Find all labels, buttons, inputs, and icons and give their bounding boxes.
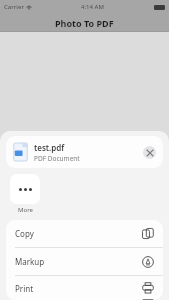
staticText: 4:14 AM (81, 3, 104, 11)
staticText: More (18, 206, 33, 214)
staticText: test.pdf (34, 142, 65, 153)
button[interactable]: Markup (6, 248, 163, 275)
button[interactable]: Print (6, 276, 163, 300)
button[interactable]: Copy (6, 220, 163, 247)
staticText: PDF Document (34, 154, 80, 163)
button[interactable]: test.pdf (6, 136, 163, 168)
staticText: Markup (15, 256, 45, 267)
button[interactable]: Close (143, 146, 156, 159)
button[interactable]: More (10, 174, 40, 214)
staticText: Carrier (4, 3, 24, 11)
staticText: Copy (15, 228, 34, 239)
staticText: Print (15, 283, 34, 294)
staticText: Photo To PDF (55, 17, 114, 29)
